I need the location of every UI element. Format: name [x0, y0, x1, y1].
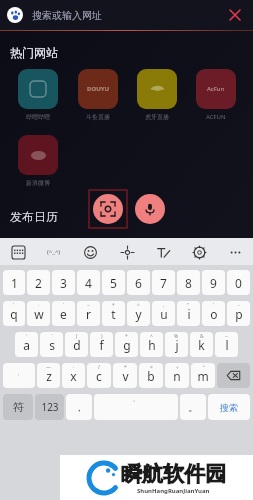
button[interactable]: 3 — [52, 270, 75, 295]
staticText: (^_^) — [47, 248, 61, 256]
staticText: 7 — [160, 275, 167, 291]
staticText: d — [73, 337, 81, 353]
staticText: j — [175, 337, 179, 353]
button[interactable]: ' — [15, 332, 38, 357]
button[interactable]: 符 — [3, 394, 33, 420]
button[interactable]: 1 — [3, 270, 25, 295]
button[interactable]: ` — [40, 332, 63, 357]
staticText: 9 — [210, 275, 217, 291]
button[interactable]: ) — [90, 332, 113, 357]
button[interactable]: 新浪微博 — [16, 133, 60, 189]
button[interactable]: 2 — [27, 270, 50, 295]
staticText: 8 — [185, 275, 192, 291]
staticText: ＂ — [201, 364, 206, 370]
button[interactable]: ` — [52, 301, 75, 326]
button[interactable]: 搜索 — [208, 394, 250, 420]
staticText: ` — [63, 302, 65, 309]
staticText: g — [123, 337, 131, 353]
button[interactable]: Settings — [187, 240, 211, 264]
button[interactable]: ÷ — [165, 363, 189, 388]
button[interactable]: * — [113, 363, 137, 388]
staticText: 搜索或输入网址 — [32, 9, 102, 22]
button[interactable]: , — [152, 301, 175, 326]
staticText: AcFun — [207, 85, 225, 93]
staticText: ShunHangRuanJianYuan — [137, 487, 210, 495]
button[interactable]: Kaomoji — [42, 240, 66, 264]
button[interactable]: Shift — [3, 363, 35, 388]
button[interactable]: 9 — [202, 270, 225, 295]
staticText: × — [150, 364, 153, 371]
staticText: 。 — [133, 395, 139, 403]
button[interactable]: ， — [66, 394, 92, 420]
staticText: / — [98, 364, 100, 371]
button[interactable]: Close — [224, 4, 246, 26]
button[interactable]: — — [37, 363, 60, 388]
button[interactable]: * — [102, 301, 125, 326]
button[interactable]: DOUYU — [76, 67, 120, 123]
button[interactable]: / — [87, 363, 111, 388]
button[interactable]: ' — [3, 301, 25, 326]
button[interactable]: 0 — [227, 270, 250, 295]
button[interactable]: 4 — [77, 270, 100, 295]
button[interactable]: 7 — [152, 270, 175, 295]
button[interactable]: ＂ — [191, 363, 215, 388]
button[interactable]: 虎牙直播 — [135, 67, 179, 123]
staticText: * — [112, 302, 115, 309]
staticText: r — [86, 306, 91, 322]
button[interactable]: Handwriting — [151, 240, 175, 264]
button[interactable]: Keyboard — [6, 240, 30, 264]
button[interactable]: Voice search — [135, 194, 165, 224]
staticText: ~ — [87, 302, 90, 309]
button[interactable]: × — [139, 363, 163, 388]
button[interactable]: ( — [65, 332, 88, 357]
button[interactable]: · — [62, 363, 85, 388]
button[interactable]: & — [190, 332, 213, 357]
button[interactable]: 哔哩哔哩 — [16, 67, 60, 123]
button[interactable]: 6 — [127, 270, 150, 295]
button[interactable]: Backspace — [217, 363, 250, 388]
button[interactable]: ~ — [215, 332, 238, 357]
button[interactable]: % — [165, 332, 188, 357]
button[interactable]: 123 — [35, 394, 64, 420]
button[interactable]: ^ — [140, 332, 163, 357]
staticText: 5 — [110, 275, 117, 291]
staticText: v — [122, 368, 129, 384]
staticText: ) — [101, 333, 103, 340]
staticText: i — [187, 306, 191, 322]
staticText: w — [34, 306, 44, 322]
button[interactable]: 搜索或输入网址 — [32, 0, 224, 30]
staticText: · — [73, 364, 75, 371]
button[interactable]: · — [27, 301, 50, 326]
staticText: o — [210, 306, 218, 322]
staticText: q — [10, 306, 18, 322]
staticText: 。 — [188, 401, 198, 414]
button[interactable]: 。 — [180, 394, 206, 420]
button[interactable]: " — [177, 301, 200, 326]
button[interactable]: Emoji — [78, 240, 102, 264]
button[interactable]: 8 — [177, 270, 200, 295]
button[interactable]: ^ — [127, 301, 150, 326]
staticText: s — [49, 337, 55, 353]
button[interactable]: 5 — [102, 270, 125, 295]
button[interactable]: ~ — [77, 301, 100, 326]
staticText: 2 — [35, 275, 42, 291]
staticText: & — [200, 333, 204, 340]
button[interactable]: More — [223, 240, 247, 264]
staticText: e — [60, 306, 67, 322]
staticText: ' — [213, 302, 215, 309]
staticText: , — [163, 302, 165, 309]
button[interactable]: Move cursor — [115, 240, 139, 264]
button[interactable]: Scan QR code — [89, 190, 127, 228]
button[interactable]: * — [115, 332, 138, 357]
staticText: 0 — [235, 275, 242, 291]
button[interactable]: ' — [202, 301, 225, 326]
button[interactable]: Baidu — [7, 7, 23, 23]
staticText: k — [198, 337, 205, 353]
staticText: 发布日历 — [10, 209, 58, 224]
button[interactable]: AcFun — [194, 67, 238, 123]
button[interactable]: - — [227, 301, 250, 326]
staticText: b — [147, 368, 155, 384]
staticText: 瞬航软件园 — [121, 461, 226, 487]
staticText: 哔哩哔哩 — [26, 113, 50, 121]
